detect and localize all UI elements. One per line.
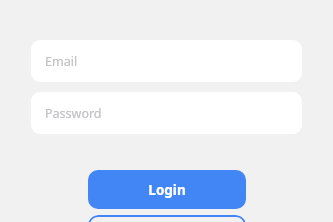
staticText: Email bbox=[45, 53, 78, 70]
button[interactable]: Password bbox=[31, 92, 302, 134]
staticText: Login bbox=[148, 181, 186, 199]
button[interactable]: Sign Up bbox=[88, 215, 246, 222]
button[interactable]: Login bbox=[88, 170, 246, 209]
button[interactable]: Email bbox=[31, 40, 302, 82]
staticText: Password bbox=[45, 105, 102, 122]
